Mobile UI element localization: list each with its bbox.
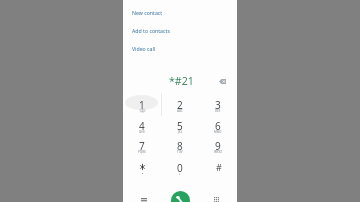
staticText: GHI	[139, 130, 145, 134]
staticText: JKL	[178, 130, 183, 134]
staticText: 3	[215, 98, 221, 109]
button[interactable]: 6	[199, 119, 237, 139]
button[interactable]: #	[211, 159, 227, 175]
button[interactable]: 5	[161, 119, 199, 139]
button[interactable]: 2	[161, 98, 199, 118]
button[interactable]: Recent calls	[133, 190, 149, 202]
staticText: 6	[215, 119, 221, 130]
staticText: MNO	[214, 130, 222, 134]
button[interactable]: New contact	[123, 3, 237, 21]
button[interactable]: 9	[199, 139, 237, 159]
staticText: ABC	[177, 109, 183, 113]
staticText: 1	[139, 98, 145, 109]
staticText: Video call	[132, 45, 156, 52]
button[interactable]: 1	[123, 98, 161, 118]
staticText: 9	[215, 139, 221, 150]
staticText: 5	[177, 119, 183, 130]
staticText: *#21	[169, 74, 194, 88]
staticText: DEF	[215, 109, 221, 113]
button[interactable]: 8	[161, 139, 199, 159]
staticText: PQRS	[138, 150, 146, 154]
staticText: +	[179, 172, 181, 176]
button[interactable]: Video call	[123, 39, 237, 57]
button[interactable]: Backspace	[216, 75, 229, 88]
staticText: 8	[177, 139, 183, 150]
button[interactable]: 0	[161, 161, 199, 181]
staticText: TUV	[177, 150, 183, 154]
button[interactable]: 7	[123, 139, 161, 159]
staticText: 7	[139, 139, 145, 150]
button[interactable]	[123, 161, 161, 181]
staticText: 4	[139, 119, 145, 130]
button[interactable]: Add to contacts	[123, 21, 237, 39]
button[interactable]: Call	[171, 191, 190, 202]
button[interactable]: 3	[199, 98, 237, 118]
button[interactable]: 4	[123, 119, 161, 139]
button[interactable]	[199, 161, 237, 181]
staticText: #	[216, 161, 222, 173]
button[interactable]: Keypad	[206, 189, 222, 202]
staticText: 2	[177, 98, 183, 109]
staticText: Add to contacts	[132, 27, 170, 34]
staticText: New contact	[132, 9, 163, 16]
staticText: 0	[177, 161, 183, 172]
staticText: WXYZ	[214, 150, 222, 154]
